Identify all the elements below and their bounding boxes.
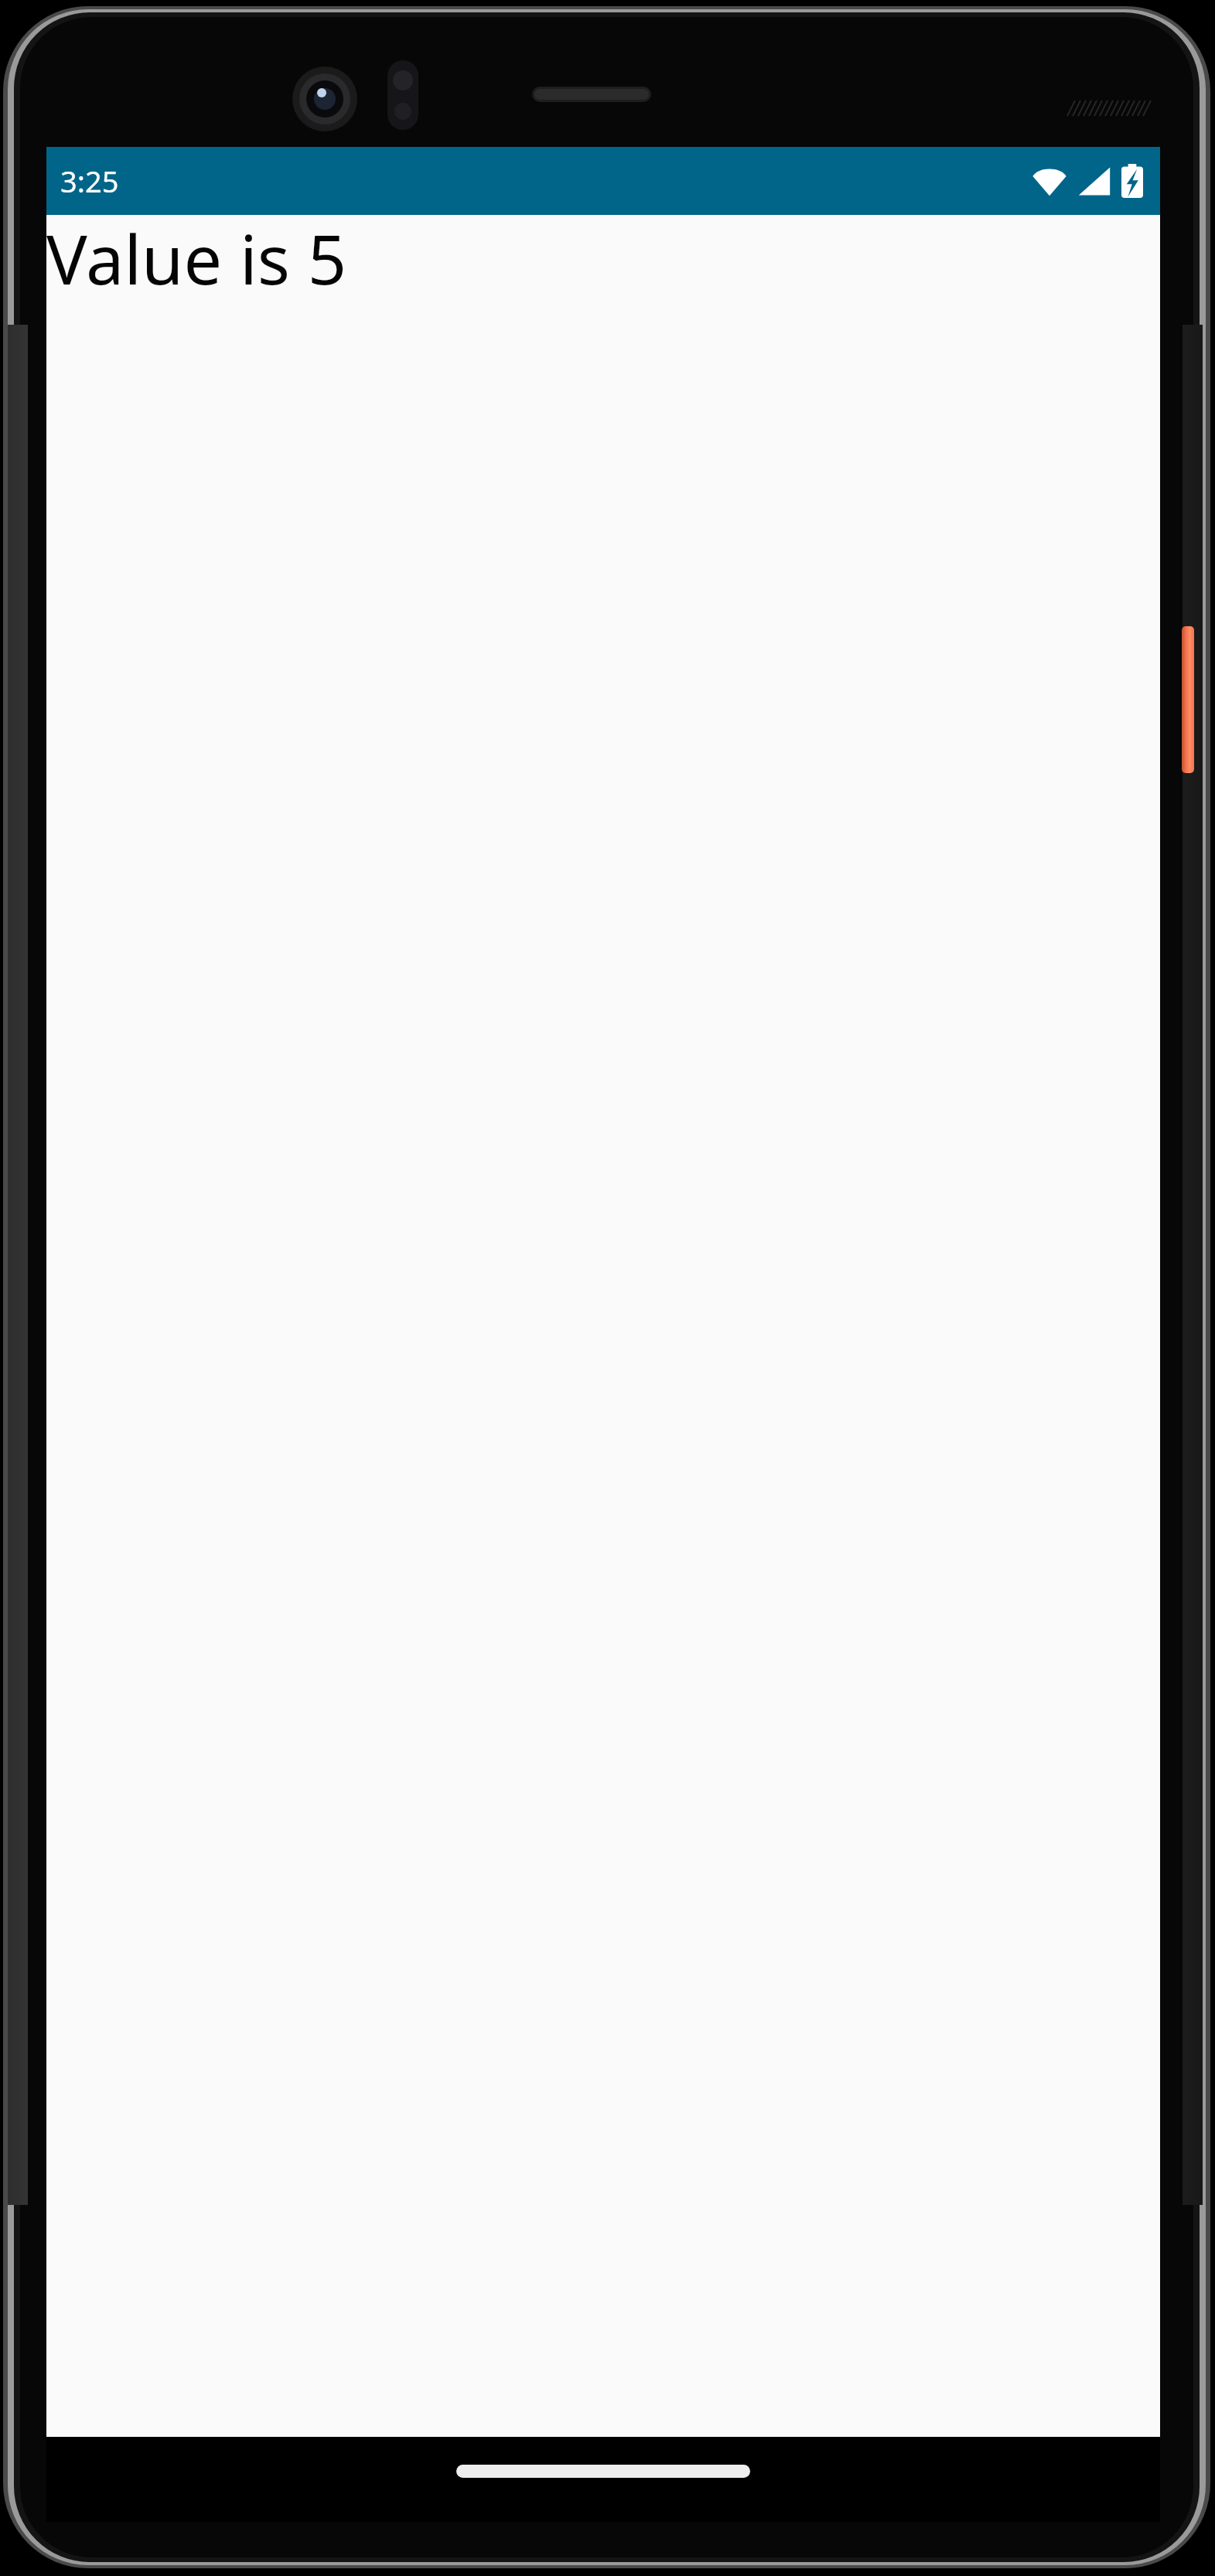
staticText: Value is 5 bbox=[46, 212, 347, 305]
button[interactable]: Power button bbox=[1182, 626, 1194, 773]
staticText: 3:25 bbox=[60, 161, 119, 201]
